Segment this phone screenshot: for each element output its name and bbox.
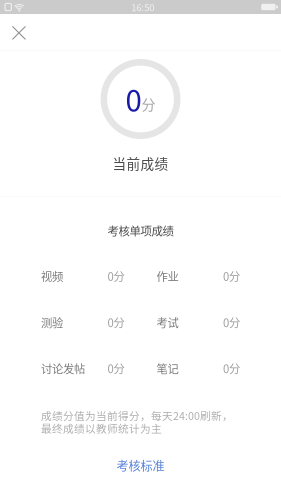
button[interactable]: Close [0,14,38,50]
staticText: 成绩分值为当前得分，每天24:00刷新， [41,408,233,423]
staticText: 视频 [41,268,63,284]
staticText: 0分 [223,360,240,377]
staticText: 最终成绩以教师统计为主 [41,420,162,436]
staticText: 讨论发帖 [41,360,85,377]
staticText: 考核单项成绩 [107,222,173,239]
staticText: 分 [141,93,155,114]
staticText: 0分 [223,268,240,284]
staticText: 当前成绩 [112,153,168,173]
staticText: 考核标准 [116,457,164,474]
staticText: 笔记 [156,360,178,377]
staticText: 0分 [107,314,124,330]
staticText: 16:50 [131,0,154,14]
staticText: 测验 [41,314,63,330]
staticText: 作业 [156,268,178,284]
button[interactable]: 考核标准 [95,455,185,475]
staticText: 考试 [156,314,178,330]
staticText: 0分 [107,268,124,284]
staticText: 0 [125,78,141,120]
staticText: 0分 [107,360,124,377]
staticText: 0分 [223,314,240,330]
